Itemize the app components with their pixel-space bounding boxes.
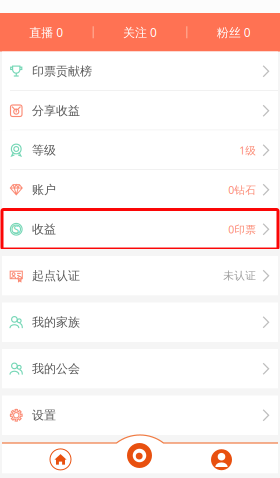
staticText: 我的家族 [32, 315, 80, 330]
button[interactable]: 印票贡献榜 [2, 51, 278, 91]
button[interactable]: 粉丝 0 [187, 13, 280, 51]
staticText: 未认证 [223, 269, 256, 282]
staticText: 印票贡献榜 [32, 64, 92, 79]
button[interactable]: 首页 [43, 444, 77, 474]
button[interactable]: 直播 0 [0, 13, 93, 51]
button[interactable]: 账户 [2, 170, 278, 209]
button[interactable]: 等级 [2, 130, 278, 170]
staticText: 分享收益 [32, 103, 80, 118]
button[interactable]: 我的 [204, 445, 238, 475]
staticText: 0印票 [228, 222, 256, 236]
staticText: 收益 [32, 222, 56, 237]
staticText: 1级 [239, 143, 256, 157]
button[interactable]: 起点认证 [2, 256, 278, 295]
button[interactable]: 我的家族 [2, 302, 278, 342]
staticText: 设置 [32, 408, 56, 423]
button[interactable]: 我的公会 [2, 349, 278, 388]
button[interactable]: 设置 [2, 395, 278, 435]
staticText: 等级 [32, 143, 56, 158]
button[interactable]: S [2, 209, 278, 249]
button[interactable]: 分享收益 [2, 91, 278, 130]
staticText: 我的公会 [32, 361, 80, 376]
staticText: 起点认证 [32, 268, 80, 283]
staticText: 直播 0 [29, 24, 63, 40]
staticText: 0钻石 [228, 183, 256, 197]
staticText: 账户 [32, 182, 56, 197]
button[interactable]: 开播 [122, 440, 156, 470]
button[interactable]: 关注 0 [94, 13, 186, 51]
staticText: 关注 0 [123, 24, 157, 40]
staticText: S [13, 222, 19, 236]
staticText: 粉丝 0 [217, 24, 251, 40]
